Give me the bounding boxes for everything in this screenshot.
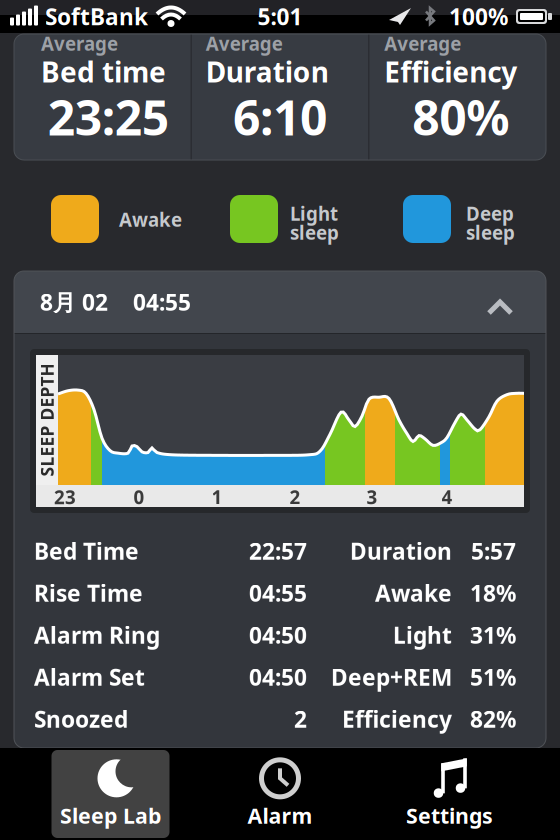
staticText: Alarm Ring: [34, 620, 160, 650]
staticText: Settings: [406, 801, 493, 830]
staticText: 04:50: [249, 662, 307, 692]
staticText: Alarm Set: [34, 662, 145, 692]
button[interactable]: Alarm: [221, 750, 339, 838]
staticText: 31%: [470, 620, 516, 650]
staticText: 80%: [412, 85, 509, 149]
staticText: 18%: [470, 578, 516, 608]
staticText: Awake: [375, 578, 452, 608]
staticText: 8月 02: [40, 287, 108, 317]
staticText: Snoozed: [34, 704, 128, 734]
staticText: Average: [41, 31, 118, 56]
button[interactable]: Collapse 8月 02 04:55: [14, 271, 546, 333]
staticText: Bed time: [41, 53, 166, 90]
staticText: 2: [289, 485, 300, 509]
staticText: 2: [294, 704, 307, 734]
button[interactable]: Sleep Lab: [51, 750, 169, 838]
staticText: sleep: [466, 220, 515, 245]
staticText: 82%: [470, 704, 516, 734]
staticText: 0: [133, 485, 144, 509]
staticText: SLEEP DEPTH: [0, 408, 103, 431]
staticText: Efficiency: [384, 53, 517, 90]
staticText: Duration: [350, 536, 452, 566]
staticText: Sleep Lab: [60, 801, 161, 830]
staticText: Duration: [206, 53, 329, 90]
staticText: 5:01: [257, 1, 302, 31]
staticText: 22:57: [249, 536, 307, 566]
staticText: Efficiency: [342, 704, 452, 734]
staticText: sleep: [290, 220, 339, 245]
button[interactable]: Settings: [390, 750, 508, 838]
staticText: Light: [290, 201, 338, 226]
staticText: Rise Time: [34, 578, 143, 608]
staticText: Alarm: [247, 801, 312, 830]
staticText: Average: [384, 31, 461, 56]
staticText: SoftBank: [45, 1, 148, 31]
staticText: 04:55: [249, 578, 307, 608]
staticText: Deep: [466, 201, 514, 226]
staticText: 04:50: [249, 620, 307, 650]
staticText: 23:25: [48, 85, 169, 149]
staticText: 100%: [449, 1, 508, 31]
staticText: Awake: [119, 207, 182, 232]
staticText: 6:10: [233, 85, 327, 149]
staticText: 5:57: [471, 536, 516, 566]
staticText: Deep+REM: [331, 662, 452, 692]
staticText: 51%: [470, 662, 516, 692]
staticText: 23: [54, 485, 76, 509]
staticText: 4: [441, 485, 452, 509]
staticText: Light: [393, 620, 452, 650]
staticText: 1: [211, 485, 222, 509]
staticText: 04:55: [133, 287, 191, 317]
staticText: Average: [206, 31, 283, 56]
staticText: Bed Time: [34, 536, 139, 566]
staticText: 3: [366, 485, 377, 509]
